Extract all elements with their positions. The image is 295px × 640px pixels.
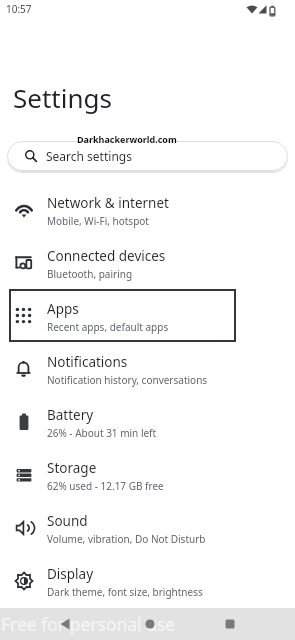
button[interactable]: Storage	[0, 448, 295, 501]
button[interactable]: Network & internet	[0, 183, 295, 236]
staticText: Recent apps, default apps	[47, 320, 169, 334]
button[interactable]	[218, 612, 242, 636]
staticText: Volume, vibration, Do Not Disturb	[47, 532, 206, 546]
button[interactable]	[53, 612, 77, 636]
staticText: Mobile, Wi-Fi, hotspot	[47, 214, 149, 228]
staticText: Free for personal use	[1, 612, 176, 636]
button[interactable]: Display	[0, 554, 295, 607]
button[interactable]: Connected devices	[0, 236, 295, 289]
staticText: 26% - About 31 min left	[47, 426, 157, 440]
staticText: Search settings	[46, 148, 132, 164]
staticText: 62% used - 12.17 GB free	[47, 479, 164, 493]
button[interactable]: Battery	[0, 395, 295, 448]
button[interactable]: Apps	[0, 289, 295, 342]
staticText: Settings	[13, 80, 112, 115]
staticText: Network & internet	[47, 194, 169, 212]
staticText: Notifications	[47, 353, 128, 371]
staticText: Notification history, conversations	[47, 373, 208, 387]
staticText: Sound	[47, 512, 88, 530]
staticText: Battery	[47, 406, 94, 424]
staticText: Darkhackerworld.com	[77, 133, 177, 145]
staticText: 10:57	[6, 2, 32, 16]
staticText: Dark theme, font size, brightness	[47, 585, 203, 599]
staticText: Storage	[47, 459, 97, 477]
button[interactable]: Sound	[0, 501, 295, 554]
button[interactable]: Search settings	[7, 141, 288, 171]
staticText: Bluetooth, pairing	[47, 267, 133, 281]
button[interactable]	[138, 612, 162, 636]
button[interactable]: Notifications	[0, 342, 295, 395]
staticText: Connected devices	[47, 247, 166, 265]
staticText: Apps	[47, 300, 79, 318]
staticText: Display	[47, 565, 94, 583]
